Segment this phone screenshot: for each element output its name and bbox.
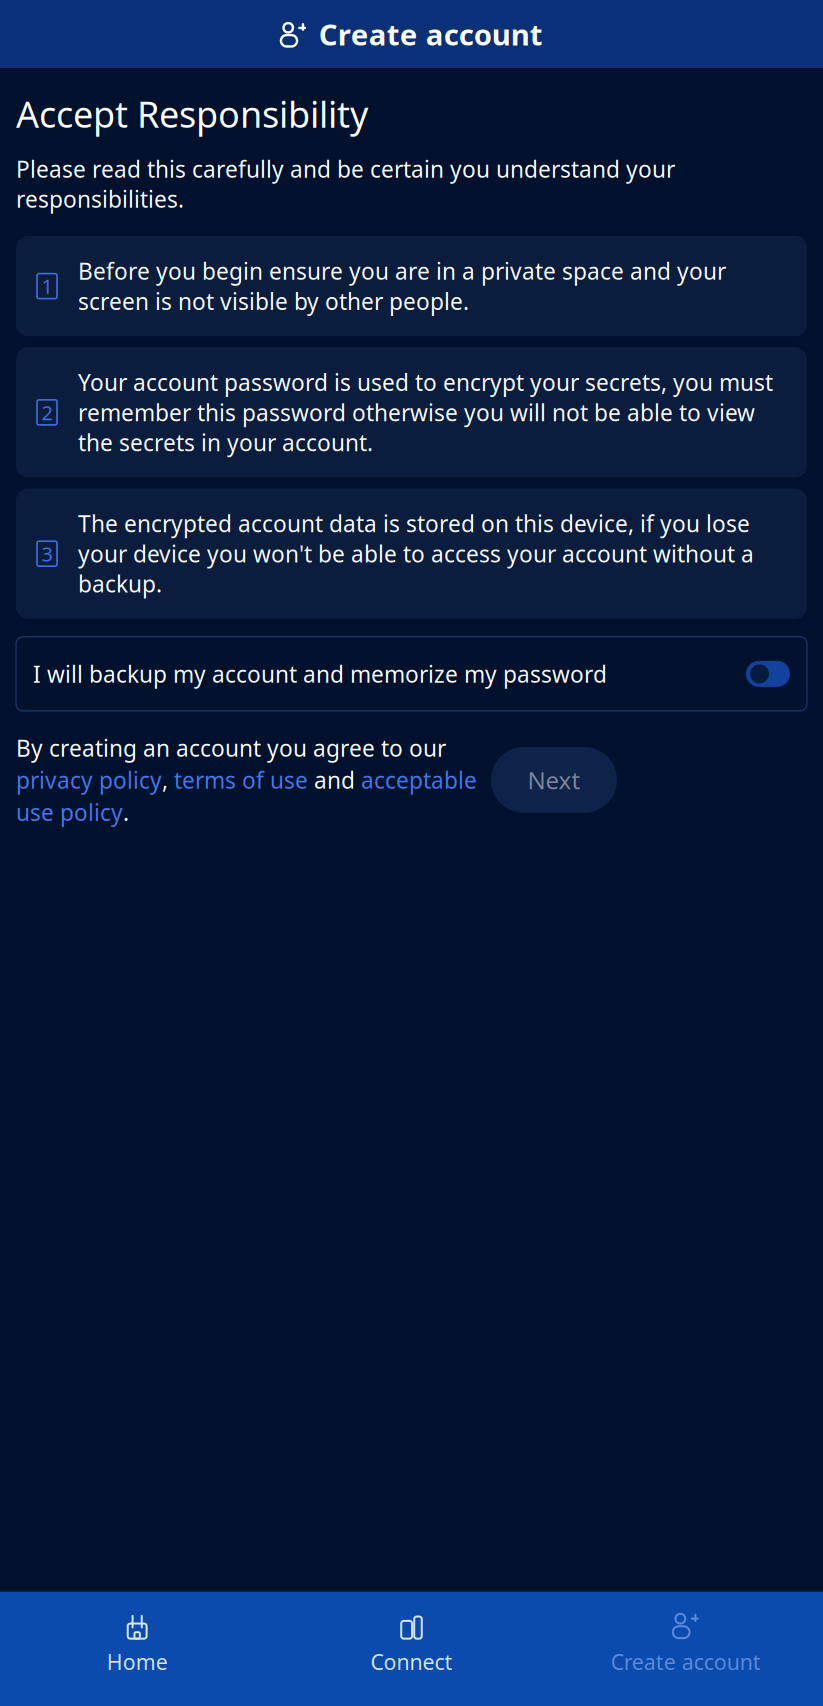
staticText: privacy policy: [16, 765, 162, 795]
button[interactable]: terms of use: [174, 765, 308, 795]
staticText: Connect: [370, 1648, 452, 1676]
staticText: ,: [162, 765, 174, 795]
staticText: Before you begin ensure you are in a pri…: [78, 256, 726, 316]
button[interactable]: Create account: [549, 1612, 823, 1676]
staticText: The encrypted account data is stored on …: [78, 508, 754, 599]
staticText: terms of use: [174, 765, 308, 795]
staticText: .: [123, 797, 129, 827]
staticText: 1: [41, 273, 52, 299]
staticText: Your account password is used to encrypt…: [78, 367, 773, 457]
staticText: Please read this carefully and be certai…: [16, 154, 675, 214]
staticText: 2: [41, 399, 52, 426]
button[interactable]: Next: [491, 747, 617, 813]
staticText: Create account: [319, 14, 543, 53]
staticText: acceptable: [361, 765, 477, 795]
button[interactable]: acceptable: [361, 765, 477, 795]
staticText: use policy: [16, 797, 123, 827]
button[interactable]: Home: [0, 1612, 274, 1676]
staticText: Next: [527, 764, 580, 796]
button[interactable]: I will backup my account and memorize my…: [16, 637, 807, 711]
button[interactable]: use policy: [16, 797, 123, 827]
staticText: Home: [107, 1648, 168, 1676]
staticText: Create account: [611, 1648, 761, 1676]
button[interactable]: Connect: [274, 1612, 549, 1676]
staticText: 3: [41, 540, 52, 567]
staticText: By creating an account you agree to our: [16, 733, 446, 763]
staticText: I will backup my account and memorize my…: [33, 659, 607, 689]
button[interactable]: privacy policy: [16, 765, 162, 795]
staticText: and: [308, 765, 361, 795]
staticText: Accept Responsibility: [16, 90, 368, 138]
